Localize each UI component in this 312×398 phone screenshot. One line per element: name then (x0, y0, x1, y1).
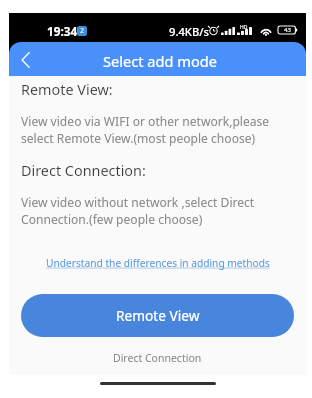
staticText: Select add mode (103, 51, 217, 71)
button[interactable]: Understand the differences in adding met… (42, 252, 274, 274)
staticText: 43 (284, 26, 291, 34)
button[interactable]: Direct Connection (109, 347, 206, 369)
staticText: Remote View: (21, 80, 113, 100)
button[interactable]: Back (9, 43, 42, 76)
staticText: Direct Connection: (21, 161, 146, 181)
staticText: 19:34 (47, 23, 78, 39)
staticText: HD (240, 24, 248, 31)
staticText: 9.4KB/s (169, 24, 209, 39)
staticText: Remote View (116, 306, 200, 325)
button[interactable]: Remote View (21, 294, 294, 337)
staticText: 2 (80, 26, 85, 36)
staticText: View video without network ,select Direc… (21, 194, 255, 228)
staticText: View video via WIFI or other network,ple… (21, 113, 270, 147)
